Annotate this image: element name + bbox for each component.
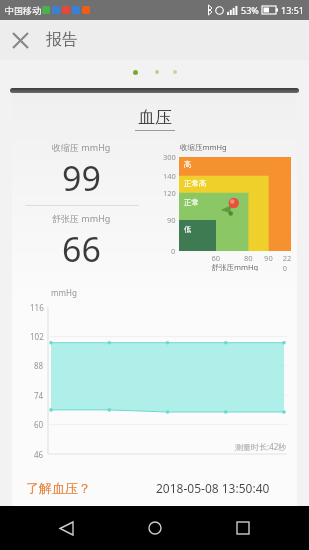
staticText: 中国移动 [5,5,41,16]
button[interactable]: 了解血压？ [26,476,91,500]
staticText: 收缩压 mmHg [52,141,111,153]
staticText: 66 [62,226,101,271]
staticText: 53% [241,4,259,16]
button[interactable]: Recents [221,506,265,550]
staticText: 13:51 [281,4,305,16]
button[interactable]: Home [133,506,177,550]
staticText: 了解血压？ [26,480,91,496]
staticText: 舒张压 mmHg [52,212,111,224]
staticText: 血压 [138,107,172,128]
staticText: 99 [62,155,101,201]
button[interactable]: Back [44,506,88,550]
staticText: 2018-05-08 13:50:40 [156,480,270,496]
button[interactable]: Close [0,20,40,60]
staticText: 报告 [46,30,78,50]
